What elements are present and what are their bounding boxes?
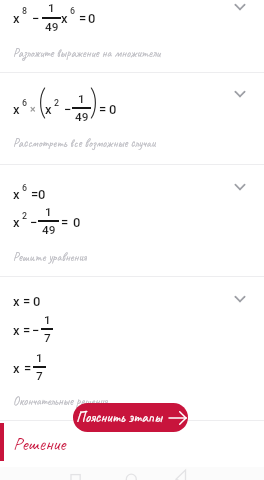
staticText: 1 (36, 351, 43, 365)
staticText: Разложите выражение на множители (13, 46, 161, 61)
staticText: 1 (48, 1, 55, 15)
staticText: − (64, 102, 72, 117)
staticText: 0 (88, 11, 96, 26)
staticText: = (99, 102, 107, 117)
staticText: 0 (109, 102, 117, 117)
staticText: 1 (44, 313, 51, 327)
staticText: 1 (78, 92, 85, 106)
button[interactable]: Expand step (226, 173, 254, 201)
staticText: = (24, 361, 32, 376)
staticText: 6 (70, 6, 76, 16)
staticText: x (13, 215, 20, 230)
staticText: − (32, 11, 40, 26)
staticText: x (45, 102, 52, 117)
staticText: 49 (45, 20, 59, 34)
button[interactable]: Expand step (226, 0, 254, 21)
staticText: × (30, 103, 36, 115)
staticText: Окончательные решения (13, 394, 108, 409)
staticText: − (30, 215, 38, 230)
staticText: − (32, 323, 40, 338)
button[interactable] (0, 73, 264, 165)
staticText: x (13, 102, 20, 117)
button[interactable]: Expand step (226, 80, 254, 108)
button[interactable]: Expand step (226, 285, 254, 313)
staticText: 8 (22, 6, 28, 16)
staticText: 6 (22, 98, 28, 108)
staticText: 7 (36, 369, 43, 383)
staticText: Решите уравнения (13, 250, 87, 265)
staticText: = (79, 11, 87, 26)
staticText: 2 (22, 211, 28, 221)
staticText: 0 (38, 187, 46, 202)
staticText: x (13, 294, 20, 309)
staticText: 2 (54, 98, 60, 108)
staticText: = (23, 323, 31, 338)
staticText: = (31, 187, 39, 202)
staticText: 49 (42, 223, 56, 237)
button[interactable] (0, 0, 264, 73)
staticText: 6 (22, 183, 28, 193)
staticText: 7 (44, 331, 51, 345)
staticText: x (13, 361, 20, 376)
staticText: x (13, 187, 20, 202)
staticText: Пояснить этапы (76, 408, 163, 427)
staticText: 1 (45, 205, 52, 219)
staticText: = (61, 215, 69, 230)
staticText: Рассмотреть все возможные случаи (13, 136, 156, 151)
staticText: 49 (75, 110, 89, 124)
staticText: Решение (13, 432, 66, 456)
button[interactable]: Пояснить этапы (73, 403, 188, 432)
staticText: x (61, 11, 68, 26)
staticText: 0 (33, 294, 41, 309)
staticText: = (23, 294, 31, 309)
staticText: x (13, 11, 20, 26)
staticText: x (13, 323, 20, 338)
button[interactable] (0, 165, 264, 277)
staticText: 0 (73, 215, 81, 230)
button[interactable] (0, 277, 264, 421)
